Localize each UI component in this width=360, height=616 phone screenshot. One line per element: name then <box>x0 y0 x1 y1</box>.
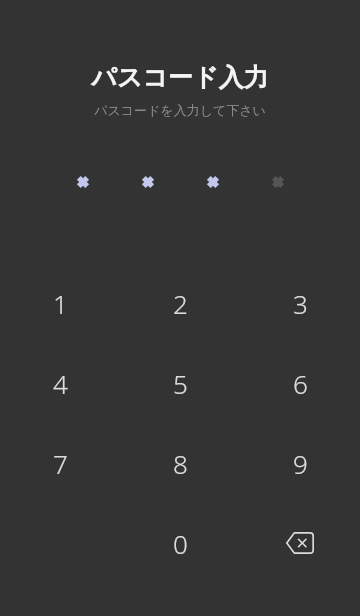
staticText: 9 <box>293 446 308 481</box>
staticText: 4 <box>53 366 68 401</box>
staticText: 2 <box>173 286 188 321</box>
staticText: 7 <box>53 446 68 481</box>
staticText: パスコードを入力して下さい <box>0 102 360 118</box>
button[interactable]: 3 <box>240 263 360 343</box>
staticText: パスコード入力 <box>0 62 360 93</box>
button[interactable]: 0 <box>120 503 240 583</box>
staticText: 0 <box>173 526 188 561</box>
button[interactable]: 1 <box>0 263 120 343</box>
button[interactable]: 2 <box>120 263 240 343</box>
button[interactable]: 6 <box>240 343 360 423</box>
button[interactable]: 9 <box>240 423 360 503</box>
button[interactable]: 5 <box>120 343 240 423</box>
button[interactable]: 7 <box>0 423 120 503</box>
staticText: 8 <box>173 446 188 481</box>
button[interactable]: 8 <box>120 423 240 503</box>
staticText: 1 <box>53 286 68 321</box>
button[interactable]: 4 <box>0 343 120 423</box>
staticText: 3 <box>293 286 308 321</box>
staticText: 5 <box>173 366 188 401</box>
button[interactable]: Backspace <box>240 503 360 583</box>
staticText: 6 <box>293 366 308 401</box>
